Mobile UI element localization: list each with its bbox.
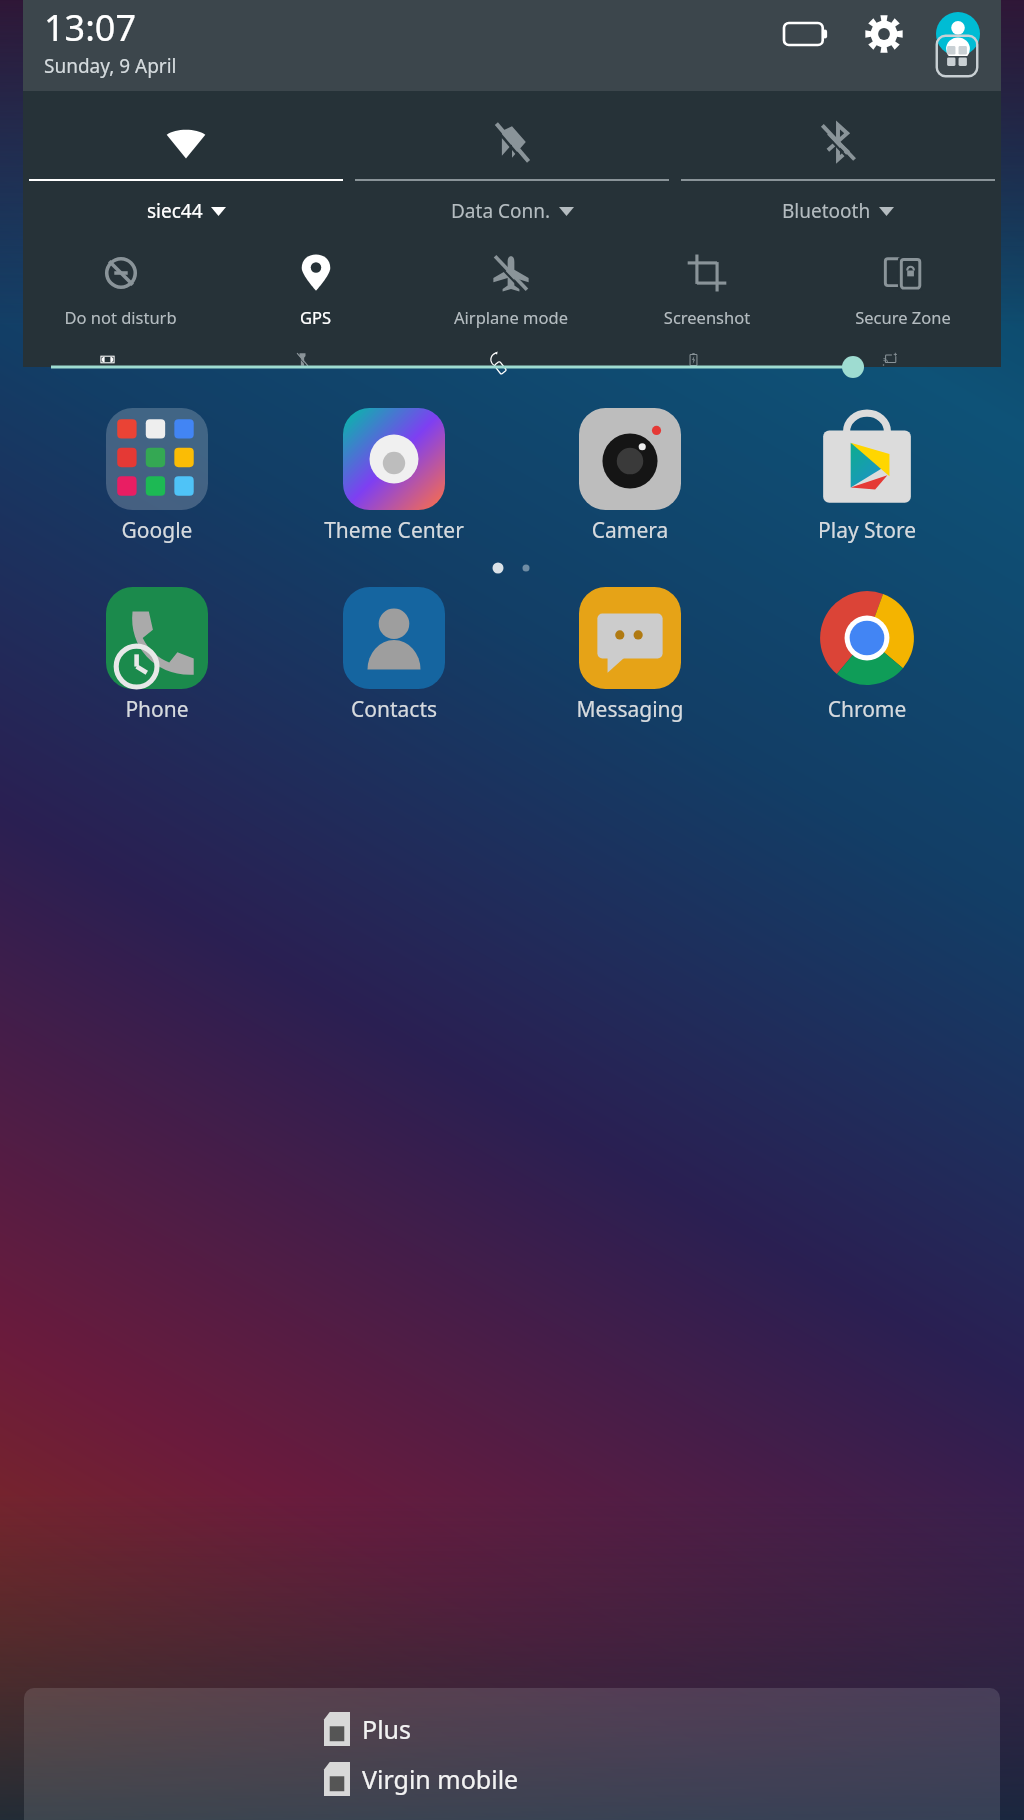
button[interactable]: Do not disturb [23,246,218,328]
staticText: Bluetooth [782,198,871,224]
staticText: Sunday, 9 April [44,53,177,79]
button[interactable]: Dolby [23,352,218,367]
button[interactable]: Phone [77,587,237,724]
button[interactable]: Plus [24,1688,1000,1820]
button[interactable]: Edit tiles [932,31,982,81]
button[interactable]: Theme Center [314,408,474,545]
staticText: Camera [550,516,710,545]
staticText: 13:07 [44,3,137,52]
staticText: Secure Zone [805,306,1001,328]
button[interactable]: Data Conn. [349,105,675,224]
button[interactable]: Chrome [787,587,947,724]
button[interactable]: Screenshot [609,246,805,328]
button[interactable]: siec44 [23,105,349,224]
button[interactable]: Bluetooth [675,105,1001,224]
staticText: Play Store [787,516,947,545]
button[interactable]: Camera [550,408,710,545]
button[interactable]: User profile [933,9,983,59]
button[interactable]: Auto-rotate [413,352,609,367]
button[interactable]: Contacts [314,587,474,724]
button[interactable]: Airplane mode [413,246,609,328]
staticText: Theme Center [314,516,474,545]
button[interactable]: Google [77,408,237,545]
button[interactable]: Settings [859,9,909,59]
staticText: Data Conn. [451,198,551,224]
staticText: Phone [77,695,237,724]
staticText: Contacts [314,695,474,724]
button[interactable]: Cast [805,352,1001,367]
staticText: Messaging [550,695,710,724]
staticText: Virgin mobile [362,1762,519,1796]
button[interactable]: Secure Zone [805,246,1001,328]
staticText: Plus [362,1712,412,1746]
button[interactable]: GPS [218,246,413,328]
staticText: Google [77,516,237,545]
staticText: siec44 [147,198,203,224]
staticText: GPS [218,306,413,328]
button[interactable]: Play Store [787,408,947,545]
staticText: Do not disturb [23,306,218,328]
button[interactable]: Messaging [550,587,710,724]
button[interactable]: Super Power [609,352,805,367]
button[interactable]: Flashlight [218,352,413,367]
staticText: Chrome [787,695,947,724]
staticText: Screenshot [609,306,805,328]
button[interactable]: Battery 61 percent [775,11,837,57]
staticText: Airplane mode [413,306,609,328]
